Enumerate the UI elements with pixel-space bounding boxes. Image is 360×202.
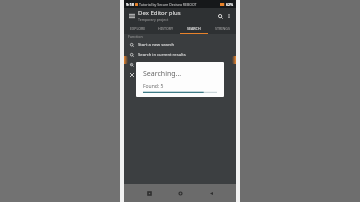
button[interactable]: Searching... xyxy=(136,62,224,97)
staticText: Temporary project xyxy=(138,17,169,22)
staticText: 9:18 xyxy=(126,2,134,7)
button[interactable]: Replace in current results xyxy=(124,60,236,70)
button[interactable]: SEARCH xyxy=(180,23,208,33)
staticText: Found: 5 xyxy=(143,83,164,90)
staticText: Search in current results xyxy=(138,52,186,58)
button[interactable]: More options xyxy=(225,12,233,20)
staticText: Function xyxy=(128,34,143,39)
staticText: HISTORY xyxy=(158,26,174,31)
button[interactable]: Back xyxy=(205,187,217,199)
staticText: 62% xyxy=(226,2,234,7)
staticText: STRINGS xyxy=(215,26,230,31)
button[interactable]: Search in current results xyxy=(124,50,236,60)
button[interactable]: Clear search results xyxy=(124,70,236,80)
button[interactable]: STRINGS xyxy=(208,23,236,33)
staticText: SEARCH xyxy=(187,26,201,31)
button[interactable]: Recent apps xyxy=(143,187,155,199)
button[interactable]: Open navigation drawer xyxy=(127,11,136,20)
staticText: Tutorial by Secure Decisea REBOOT xyxy=(139,2,197,7)
button[interactable]: HISTORY xyxy=(152,23,180,33)
staticText: Searching... xyxy=(143,69,182,79)
button[interactable]: Home xyxy=(174,187,186,199)
staticText: Dex Editor plus xyxy=(138,9,181,17)
staticText: EXPLORE xyxy=(130,26,146,31)
staticText: Start a new search xyxy=(138,42,175,48)
button[interactable]: EXPLORE xyxy=(124,23,152,33)
button[interactable]: Search xyxy=(215,11,225,21)
button[interactable]: Start a new search xyxy=(124,40,236,50)
staticText: Clear search results xyxy=(138,72,177,78)
